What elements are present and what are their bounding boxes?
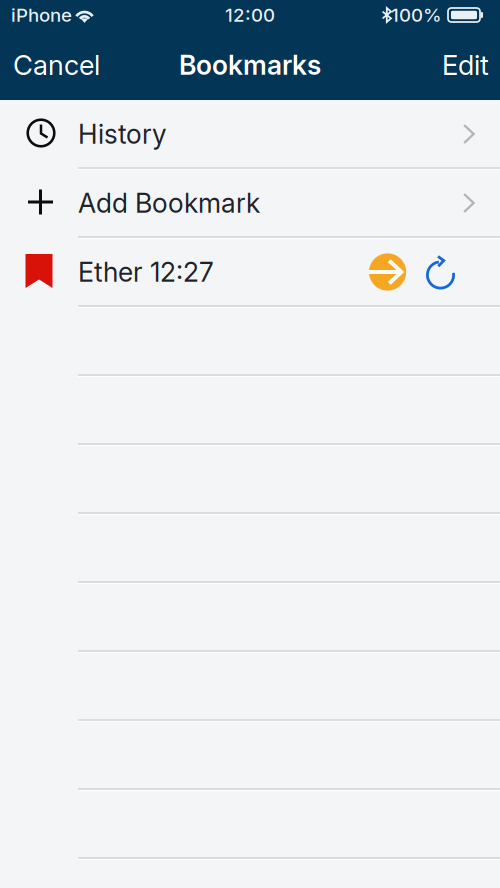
staticText: 100% bbox=[391, 4, 442, 26]
button[interactable]: Edit bbox=[429, 30, 500, 99]
staticText: Edit bbox=[442, 48, 489, 82]
button[interactable]: Cancel bbox=[0, 30, 113, 99]
staticText: iPhone bbox=[11, 4, 72, 26]
button[interactable]: Add Bookmark bbox=[0, 170, 500, 239]
button[interactable]: Ether 12:27 bbox=[0, 239, 500, 308]
staticText: Bookmarks bbox=[179, 49, 321, 81]
button[interactable]: History bbox=[0, 101, 500, 170]
staticText: History bbox=[78, 118, 167, 150]
staticText: Add Bookmark bbox=[78, 187, 260, 219]
staticText: 12:00 bbox=[225, 4, 275, 26]
staticText: Cancel bbox=[13, 48, 100, 82]
staticText: Ether 12:27 bbox=[78, 256, 214, 288]
